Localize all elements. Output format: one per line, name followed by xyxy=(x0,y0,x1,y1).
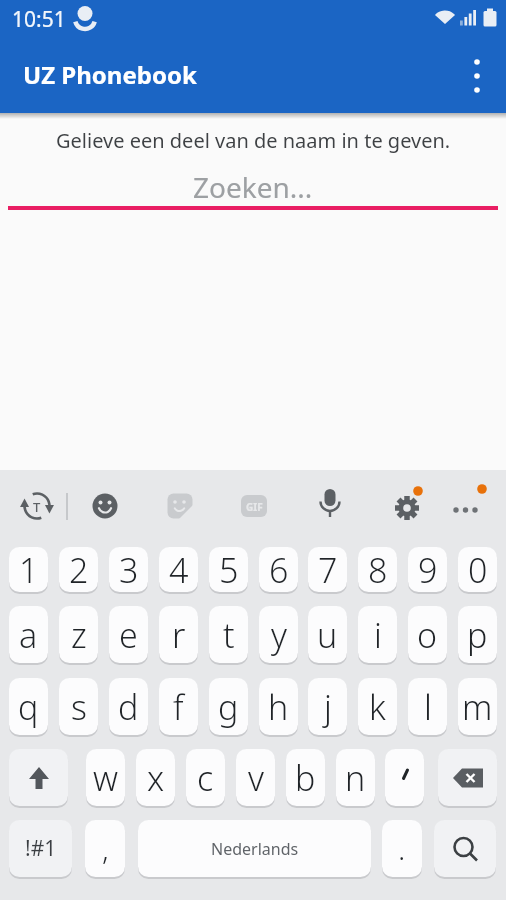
button[interactable]: k xyxy=(358,678,397,735)
staticText: , xyxy=(102,828,109,869)
button[interactable] xyxy=(385,749,424,806)
staticText: r xyxy=(172,612,186,658)
button[interactable]: 3 xyxy=(109,547,148,592)
button[interactable]: , xyxy=(85,820,125,877)
staticText: y xyxy=(271,612,287,658)
staticText: . xyxy=(398,828,406,869)
staticText: q xyxy=(18,684,39,730)
button[interactable]: u xyxy=(308,606,347,663)
staticText: x xyxy=(147,755,165,801)
staticText: j xyxy=(324,684,332,730)
button[interactable]: v xyxy=(236,749,275,806)
button[interactable]: 1 xyxy=(9,547,48,592)
button[interactable]: a xyxy=(9,606,48,663)
staticText: b xyxy=(295,755,316,801)
staticText: 3 xyxy=(119,547,139,592)
staticText: z xyxy=(71,612,87,658)
staticText: 5 xyxy=(219,547,239,592)
button[interactable] xyxy=(455,48,499,104)
staticText: h xyxy=(268,684,289,730)
staticText: f xyxy=(173,684,184,730)
button[interactable]: 0 xyxy=(458,547,497,592)
button[interactable] xyxy=(309,486,351,528)
staticText: u xyxy=(317,612,338,658)
button[interactable]: T xyxy=(16,486,58,528)
button[interactable]: Nederlands xyxy=(138,820,371,877)
button[interactable]: b xyxy=(286,749,325,806)
button[interactable]: h xyxy=(259,678,298,735)
button[interactable] xyxy=(434,820,496,877)
staticText: !#1 xyxy=(25,834,57,863)
staticText: d xyxy=(118,684,139,730)
staticText: g xyxy=(218,684,239,730)
staticText: 8 xyxy=(368,547,388,592)
staticText: Gelieve een deel van de naam in te geven… xyxy=(56,127,451,154)
button[interactable]: 8 xyxy=(358,547,397,592)
button[interactable]: 7 xyxy=(308,547,347,592)
button[interactable]: y xyxy=(259,606,298,663)
button[interactable]: c xyxy=(186,749,225,806)
button[interactable]: p xyxy=(458,606,497,663)
staticText: p xyxy=(467,612,488,658)
staticText: w xyxy=(93,755,118,801)
staticText: Nederlands xyxy=(211,838,299,860)
button[interactable] xyxy=(84,486,126,528)
button[interactable] xyxy=(9,749,68,806)
button[interactable]: j xyxy=(308,678,347,735)
button[interactable]: r xyxy=(159,606,198,663)
button[interactable]: e xyxy=(109,606,148,663)
staticText: k xyxy=(369,684,386,730)
staticText: 6 xyxy=(269,547,289,592)
button[interactable] xyxy=(386,486,432,528)
button[interactable]: d xyxy=(109,678,148,735)
staticText: 7 xyxy=(318,547,338,592)
staticText: e xyxy=(119,612,138,658)
staticText: Zoeken... xyxy=(193,168,313,206)
staticText: T xyxy=(33,498,41,516)
button[interactable]: 4 xyxy=(159,547,198,592)
button[interactable]: w xyxy=(86,749,125,806)
button[interactable]: x xyxy=(136,749,175,806)
staticText: n xyxy=(345,755,366,801)
button[interactable]: 2 xyxy=(59,547,98,592)
staticText: 9 xyxy=(418,547,438,592)
staticText: 2 xyxy=(69,547,89,592)
staticText: t xyxy=(223,612,235,658)
button[interactable]: q xyxy=(9,678,48,735)
staticText: i xyxy=(374,612,382,658)
button[interactable]: 5 xyxy=(209,547,248,592)
button[interactable]: m xyxy=(458,678,497,735)
button[interactable]: !#1 xyxy=(9,820,72,877)
button[interactable]: 9 xyxy=(408,547,447,592)
staticText: 10:51 xyxy=(12,5,66,34)
button[interactable]: s xyxy=(59,678,98,735)
staticText: 1 xyxy=(19,547,39,592)
staticText: 0 xyxy=(468,547,488,592)
staticText: o xyxy=(417,612,438,658)
button[interactable] xyxy=(159,486,201,528)
staticText: 4 xyxy=(169,547,189,592)
staticText: a xyxy=(19,612,38,658)
staticText: m xyxy=(462,684,493,730)
staticText: v xyxy=(248,755,264,801)
staticText: UZ Phonebook xyxy=(23,58,197,91)
button[interactable]: t xyxy=(209,606,248,663)
button[interactable]: Zoeken... xyxy=(0,168,506,206)
button[interactable]: z xyxy=(59,606,98,663)
button[interactable]: g xyxy=(209,678,248,735)
button[interactable]: GIF xyxy=(233,486,275,528)
button[interactable] xyxy=(446,484,490,528)
staticText: l xyxy=(424,684,432,730)
button[interactable]: o xyxy=(408,606,447,663)
button[interactable]: . xyxy=(382,820,422,877)
button[interactable]: 6 xyxy=(259,547,298,592)
button[interactable]: i xyxy=(358,606,397,663)
button[interactable]: l xyxy=(408,678,447,735)
button[interactable] xyxy=(438,749,497,806)
staticText: s xyxy=(71,684,87,730)
button[interactable]: f xyxy=(159,678,198,735)
staticText: GIF xyxy=(246,500,263,514)
staticText: c xyxy=(197,755,214,801)
button[interactable]: n xyxy=(336,749,375,806)
